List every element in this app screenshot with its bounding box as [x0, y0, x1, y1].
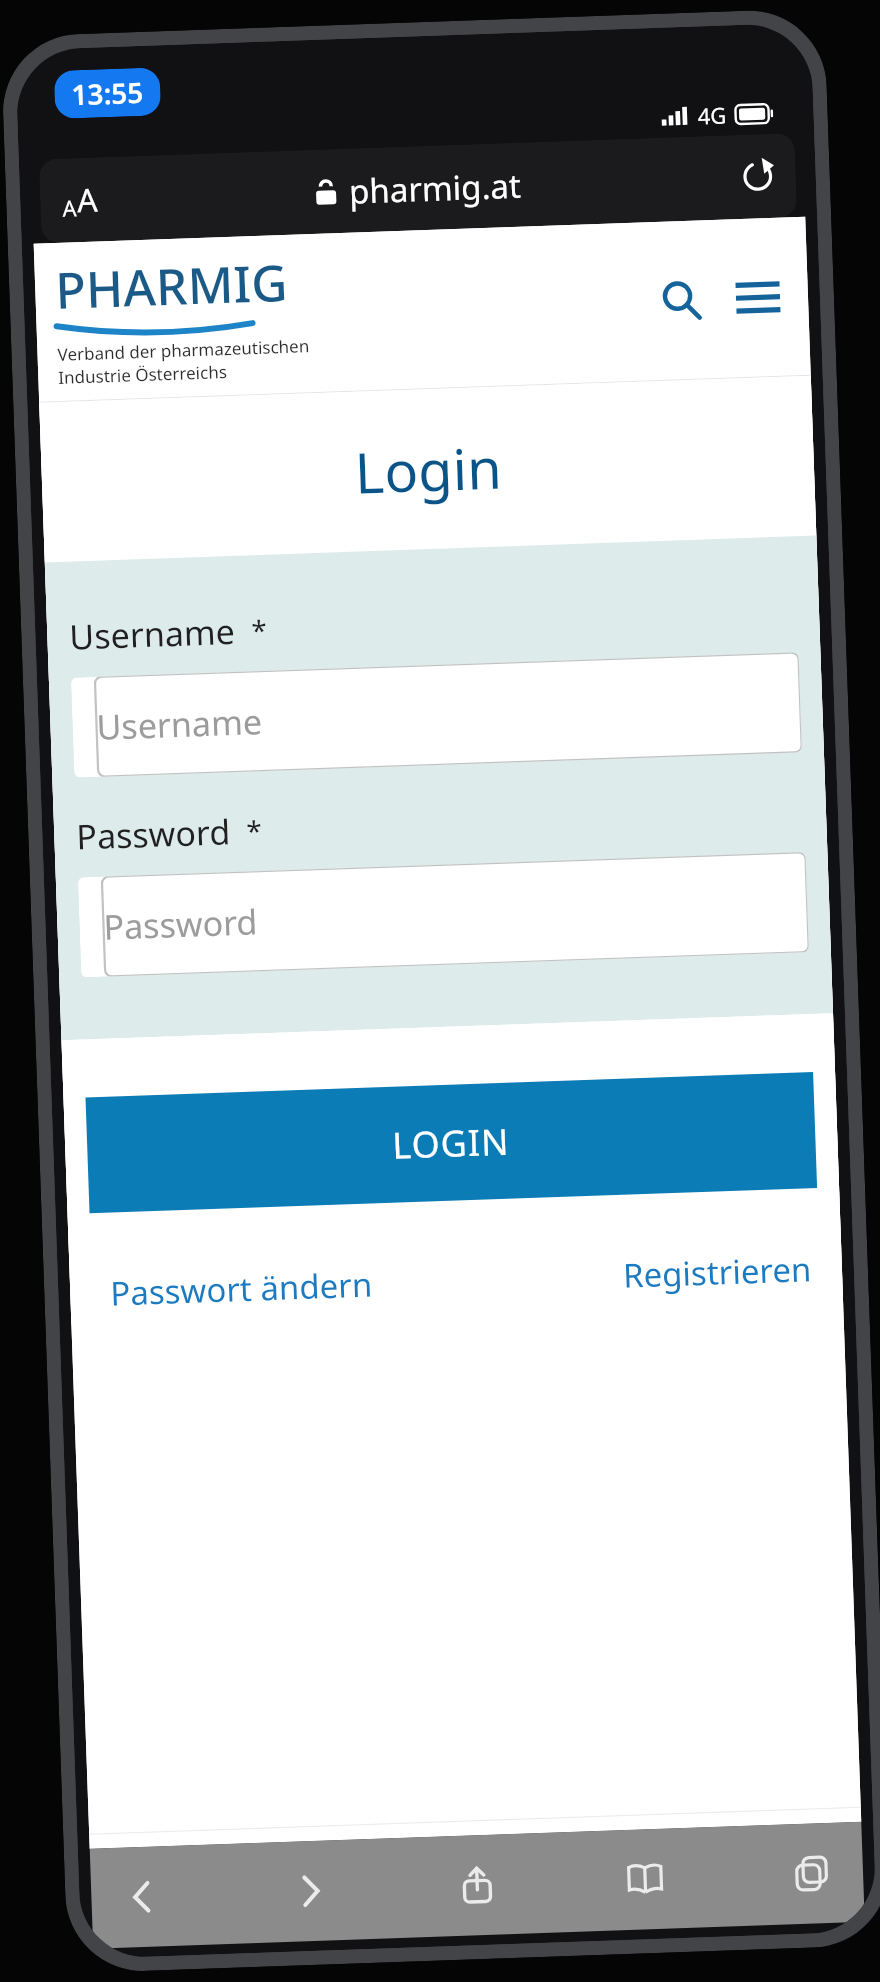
button[interactable]: Registrieren — [614, 1238, 821, 1306]
staticText: Login — [353, 428, 503, 510]
button[interactable]: Forward — [278, 1859, 342, 1923]
button[interactable]: Passwort ändern — [91, 1253, 391, 1324]
staticText: Passwort ändern — [110, 1262, 373, 1316]
button[interactable]: Share — [445, 1853, 509, 1917]
button[interactable]: Password — [78, 852, 809, 977]
staticText: Registrieren — [622, 1246, 813, 1298]
staticText: Password — [103, 898, 258, 950]
staticText: 4G — [697, 99, 727, 130]
staticText: PHARMIG — [54, 248, 289, 324]
button[interactable]: Reload — [733, 152, 782, 201]
staticText: LOGIN — [391, 1117, 511, 1170]
button[interactable]: PHARMIG — [54, 235, 652, 389]
staticText: pharmig.at — [348, 163, 522, 214]
staticText: 13:55 — [71, 73, 144, 113]
staticText: A — [76, 177, 99, 222]
button[interactable]: Back — [110, 1865, 174, 1929]
button[interactable]: Bookmarks — [613, 1847, 677, 1911]
button[interactable]: Text size — [53, 169, 107, 231]
button[interactable]: Menu — [725, 269, 791, 326]
button[interactable]: Username — [71, 652, 802, 778]
staticText: A — [62, 192, 78, 223]
staticText: Username — [69, 608, 236, 660]
staticText: Password — [76, 808, 231, 859]
button[interactable]: Tabs — [780, 1841, 844, 1906]
button[interactable]: LOGIN — [85, 1072, 817, 1213]
staticText: Industrie Österreichs — [58, 360, 228, 389]
staticText: * — [251, 611, 268, 649]
staticText: * — [246, 811, 263, 850]
staticText: Username — [96, 698, 263, 750]
button[interactable]: Search — [649, 268, 713, 332]
staticText: Verband der pharmazeutischen — [57, 334, 310, 366]
